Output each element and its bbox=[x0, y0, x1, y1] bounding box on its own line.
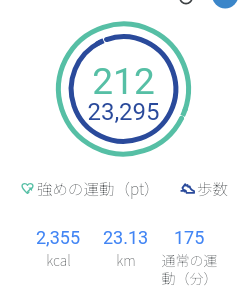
staticText: 212 bbox=[0, 60, 247, 103]
staticText: km bbox=[116, 250, 136, 270]
staticText: 175 bbox=[174, 227, 205, 248]
staticText: 通常の運動（分） bbox=[159, 250, 220, 288]
staticText: 強めの運動（pt） bbox=[37, 177, 160, 199]
staticText: 23.13 bbox=[103, 227, 149, 248]
staticText: 23,295 bbox=[0, 98, 247, 126]
other: Heart points bbox=[21, 183, 34, 196]
staticText: kcal bbox=[46, 250, 71, 270]
button[interactable]: Steps bbox=[176, 178, 236, 200]
staticText: 2,355 bbox=[36, 227, 81, 248]
staticText: 歩数 bbox=[197, 177, 229, 199]
button[interactable]: Heart points bbox=[16, 178, 164, 200]
other: Steps bbox=[180, 183, 195, 195]
